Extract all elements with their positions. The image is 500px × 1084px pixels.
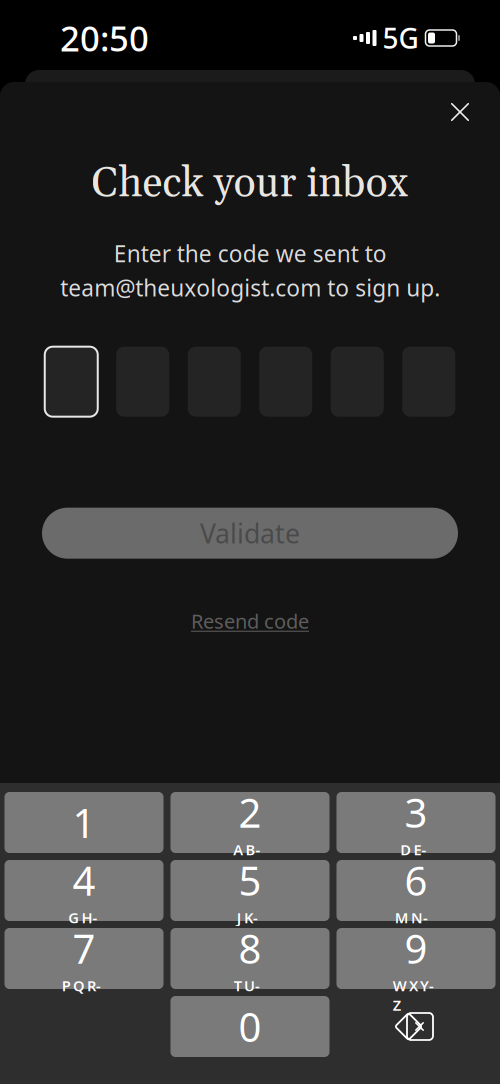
staticText: ABC [233,840,267,859]
staticText: 7 [72,922,95,975]
button[interactable]: Close [438,90,482,134]
button[interactable]: 8 [170,928,329,989]
button[interactable]: 3 [336,792,495,853]
staticText: WXYZ [393,976,439,995]
staticText: 9 [404,922,427,975]
staticText: Check your inbox [91,158,408,210]
staticText: 2 [238,786,261,839]
button[interactable]: Validate [42,508,458,559]
staticText: 3 [404,786,427,839]
button[interactable]: 4 [4,860,163,921]
staticText: 5G [382,19,418,57]
staticText: Resend code [191,608,309,634]
button[interactable]: 5 [170,860,329,921]
button[interactable]: 2 [170,792,329,853]
staticText: Enter the code we sent to team@theuxolog… [60,238,440,303]
staticText: Validate [200,515,300,551]
staticText: 6 [404,854,427,907]
button[interactable]: Delete [336,996,495,1057]
staticText: DEF [400,840,432,859]
staticText: TUV [234,976,266,995]
button[interactable]: Resend code [183,602,317,640]
staticText: JKL [237,908,263,927]
button[interactable]: 1 [4,792,163,853]
staticText: 0 [238,1000,261,1053]
staticText: PQRS [62,976,106,995]
staticText: 8 [238,922,261,975]
button[interactable]: 9 [336,928,495,989]
staticText: MNO [395,908,437,927]
button[interactable]: 7 [4,928,163,989]
staticText: GHI [68,908,100,927]
staticText: 1 [72,796,95,849]
button[interactable]: Code digit [45,347,98,417]
button[interactable]: 6 [336,860,495,921]
button[interactable]: 0 [170,996,329,1057]
staticText: 4 [72,854,95,907]
staticText: 5 [238,854,261,907]
staticText: 20:50 [60,15,149,61]
